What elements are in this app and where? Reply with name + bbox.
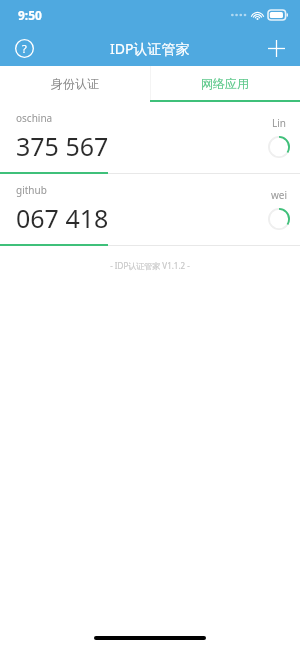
staticText: 网络应用: [201, 76, 249, 91]
staticText: Lin: [272, 116, 286, 130]
button[interactable]: Add: [260, 32, 292, 64]
button[interactable]: github: [0, 174, 300, 246]
staticText: 067 418: [16, 201, 109, 235]
button[interactable]: 身份认证: [0, 66, 150, 100]
staticText: ?: [22, 41, 27, 56]
button[interactable]: oschina: [0, 102, 300, 174]
staticText: oschina: [16, 111, 53, 125]
staticText: IDP认证管家: [110, 39, 190, 58]
staticText: 9:50: [18, 7, 42, 23]
staticText: wei: [271, 188, 288, 202]
button[interactable]: Help: [8, 32, 40, 64]
staticText: - IDP认证管家 V1.1.2 -: [110, 260, 190, 271]
staticText: 身份认证: [51, 76, 99, 91]
staticText: github: [16, 183, 47, 197]
staticText: 375 567: [16, 129, 109, 163]
button[interactable]: 网络应用: [150, 66, 300, 100]
